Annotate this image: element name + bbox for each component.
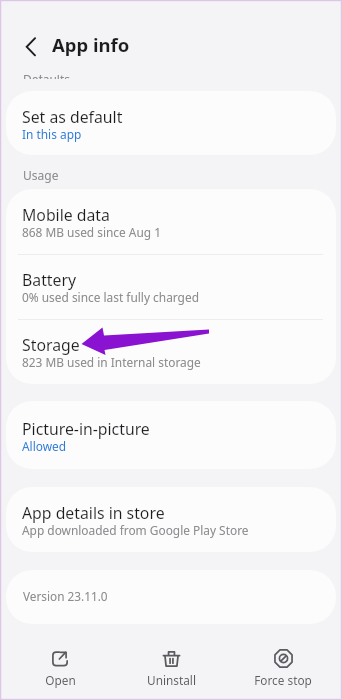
staticText: App details in store xyxy=(22,502,165,524)
staticText: Version 23.11.0 xyxy=(23,588,108,604)
staticText: App downloaded from Google Play Store xyxy=(22,522,249,538)
button[interactable]: Back xyxy=(15,29,47,61)
staticText: 823 MB used in Internal storage xyxy=(22,354,201,370)
button[interactable]: Picture-in-picture xyxy=(6,401,336,469)
staticText: Storage xyxy=(22,334,80,356)
button[interactable]: Mobile data xyxy=(6,189,336,254)
staticText: Usage xyxy=(23,167,59,183)
staticText: Picture-in-picture xyxy=(22,418,150,440)
button[interactable]: Storage xyxy=(6,319,336,384)
staticText: Uninstall xyxy=(147,672,196,688)
button[interactable]: Set as default xyxy=(6,91,336,155)
staticText: App info xyxy=(52,32,130,57)
button[interactable]: Battery xyxy=(6,254,336,319)
staticText: In this app xyxy=(22,126,82,142)
staticText: Defaults xyxy=(23,75,70,79)
staticText: Allowed xyxy=(22,438,67,454)
staticText: Set as default xyxy=(22,106,123,128)
staticText: Battery xyxy=(22,269,77,291)
button[interactable]: App details in store xyxy=(6,487,336,552)
staticText: 0% used since last fully charged xyxy=(22,289,199,305)
button[interactable]: Version 23.11.0 xyxy=(6,570,336,624)
button[interactable]: Open xyxy=(8,624,112,697)
staticText: 868 MB used since Aug 1 xyxy=(22,224,162,240)
button[interactable]: Force stop xyxy=(231,624,335,697)
staticText: Mobile data xyxy=(22,204,110,226)
staticText: Force stop xyxy=(254,672,312,688)
staticText: Open xyxy=(45,672,76,688)
button[interactable]: Uninstall xyxy=(119,624,223,697)
